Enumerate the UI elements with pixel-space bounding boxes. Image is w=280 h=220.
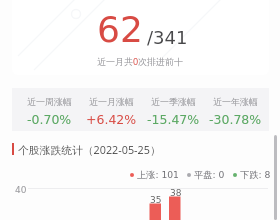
staticText: -15.47%: [147, 112, 200, 127]
button[interactable]: 近一周涨幅: [19, 88, 80, 131]
button[interactable]: 下跌: 8: [233, 169, 271, 180]
button[interactable]: 平盘: 0: [187, 169, 225, 180]
button[interactable]: [12, 0, 269, 75]
staticText: 近一月涨幅: [89, 96, 134, 107]
button[interactable]: 个股涨跌统计（2022-05-25）: [0, 142, 280, 156]
staticText: 近一月共0次排进前十: [0, 55, 280, 67]
staticText: 近一季涨幅: [151, 96, 196, 107]
button[interactable]: 近一季涨幅: [142, 88, 204, 131]
staticText: 近一周涨幅: [27, 96, 72, 107]
button[interactable]: 近一月涨幅: [80, 88, 142, 131]
staticText: +6.42%: [86, 112, 137, 127]
staticText: 62: [97, 9, 143, 51]
staticText: -30.78%: [209, 112, 262, 127]
staticText: 下跌: 8: [240, 169, 271, 180]
button[interactable]: 上涨: 101: [130, 169, 179, 180]
staticText: 35: [150, 195, 162, 205]
staticText: -0.70%: [27, 112, 72, 127]
other: Scroll position indicator: [274, 135, 277, 220]
staticText: 38: [170, 188, 182, 198]
staticText: 个股涨跌统计（2022-05-25）: [18, 142, 161, 156]
staticText: 近一年涨幅: [213, 96, 258, 107]
staticText: 平盘: 0: [194, 169, 225, 180]
staticText: /341: [147, 27, 188, 48]
staticText: 上涨: 101: [137, 169, 179, 180]
button[interactable]: 近一年涨幅: [204, 88, 266, 131]
staticText: 40: [15, 185, 27, 195]
